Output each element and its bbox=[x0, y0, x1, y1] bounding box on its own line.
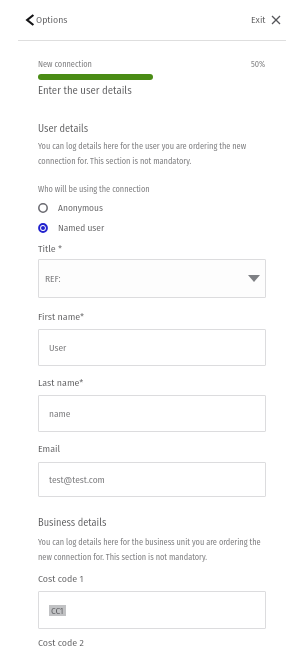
staticText: New connection bbox=[38, 59, 92, 69]
staticText: name bbox=[49, 408, 71, 419]
staticText: Enter the user details bbox=[38, 84, 132, 97]
staticText: Options bbox=[36, 14, 68, 26]
staticText: You can log details here for the user yo… bbox=[38, 141, 266, 166]
staticText: Anonymous bbox=[58, 202, 103, 213]
button[interactable]: Anonymous bbox=[38, 200, 266, 215]
staticText: CC1 bbox=[51, 605, 64, 616]
other: Close bbox=[272, 16, 280, 24]
staticText: Named user bbox=[58, 222, 105, 233]
staticText: Title * bbox=[38, 243, 63, 255]
staticText: You can log details here for the busines… bbox=[38, 537, 266, 562]
staticText: First name* bbox=[38, 311, 85, 323]
button[interactable]: name bbox=[38, 395, 266, 432]
staticText: Email bbox=[38, 443, 61, 455]
button[interactable]: Options bbox=[26, 8, 68, 32]
staticText: Cost code 1 bbox=[38, 573, 84, 585]
staticText: Business details bbox=[38, 516, 107, 528]
button[interactable]: Exit bbox=[251, 8, 280, 32]
button[interactable]: REF: bbox=[38, 259, 266, 298]
staticText: Who will be using the connection bbox=[38, 184, 150, 194]
button[interactable]: test@test.com bbox=[38, 462, 266, 497]
staticText: User bbox=[49, 342, 67, 353]
button[interactable]: User bbox=[38, 329, 266, 366]
other: Open title dropdown bbox=[248, 275, 260, 282]
staticText: Exit bbox=[251, 14, 266, 26]
staticText: User details bbox=[38, 122, 89, 134]
staticText: Last name* bbox=[38, 377, 84, 389]
staticText: test@test.com bbox=[49, 474, 105, 485]
staticText: 50% bbox=[251, 59, 266, 69]
button[interactable]: CC1 bbox=[38, 591, 266, 629]
staticText: Cost code 2 bbox=[38, 637, 84, 649]
button[interactable]: Named user bbox=[38, 220, 266, 235]
staticText: REF: bbox=[45, 273, 61, 284]
